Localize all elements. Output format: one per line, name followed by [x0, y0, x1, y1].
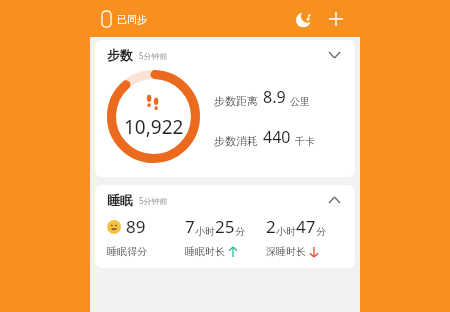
staticText: 5分钟前 — [139, 195, 168, 206]
button[interactable]: 89 — [107, 215, 185, 258]
other: Collapse — [325, 191, 343, 209]
staticText: 89 — [126, 215, 146, 238]
button[interactable]: 睡眠 — [95, 185, 355, 215]
staticText: 步数距离 — [214, 94, 258, 108]
staticText: 440 — [263, 126, 291, 148]
staticText: 步数消耗 — [214, 134, 258, 148]
button[interactable]: 睡眠 — [95, 185, 355, 268]
button[interactable]: Sleep music — [292, 7, 316, 31]
button[interactable]: 步数 — [95, 40, 355, 70]
staticText: 7 — [185, 215, 195, 238]
staticText: 10,922 — [124, 114, 184, 140]
button[interactable]: 2 — [266, 215, 347, 258]
staticText: 步数 — [107, 47, 133, 63]
button[interactable]: 步数 — [95, 40, 355, 177]
staticText: 睡眠 — [107, 192, 133, 208]
staticText: 已同步 — [117, 13, 147, 26]
button[interactable]: 7 — [185, 215, 266, 258]
staticText: 小时 — [276, 225, 296, 238]
staticText: 分 — [316, 225, 326, 238]
staticText: 47 — [296, 215, 316, 238]
staticText: 5分钟前 — [139, 50, 168, 61]
button[interactable]: Add — [324, 7, 348, 31]
staticText: 分 — [235, 225, 245, 238]
staticText: 睡眠得分 — [107, 245, 147, 258]
staticText: 睡眠时长 — [185, 245, 225, 258]
staticText: 公里 — [290, 95, 310, 108]
button[interactable]: 已同步 — [102, 11, 147, 27]
staticText: 千卡 — [295, 135, 315, 148]
staticText: 小时 — [195, 225, 215, 238]
staticText: 8.9 — [263, 86, 286, 108]
other: Expand — [325, 46, 343, 64]
staticText: 2 — [266, 215, 276, 238]
staticText: 深睡时长 — [266, 245, 306, 258]
staticText: 25 — [215, 215, 235, 238]
